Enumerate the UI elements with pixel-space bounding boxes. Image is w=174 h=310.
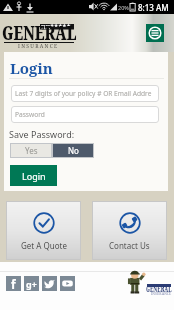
staticText: GENERAL bbox=[2, 20, 77, 46]
staticText: I N S U R A N C E bbox=[18, 43, 58, 50]
button[interactable]: Last 7 digits of your policy # OR Email … bbox=[11, 85, 159, 102]
staticText: 20% bbox=[118, 4, 129, 11]
staticText: g+ bbox=[26, 278, 37, 290]
staticText: Get A Quote bbox=[21, 240, 67, 251]
button[interactable]: Menu bbox=[146, 24, 164, 42]
staticText: Login bbox=[10, 58, 53, 78]
staticText: Contact Us bbox=[109, 240, 150, 251]
button[interactable]: Twitter bbox=[42, 276, 57, 291]
staticText: Save Password: bbox=[9, 128, 75, 140]
button[interactable]: Yes bbox=[10, 143, 52, 158]
button[interactable]: Contact Us bbox=[92, 201, 167, 260]
staticText: GENERAL bbox=[146, 282, 172, 295]
button[interactable]: Get A Quote bbox=[6, 201, 81, 260]
staticText: 8:13 AM bbox=[138, 2, 169, 13]
staticText: Password bbox=[15, 110, 45, 119]
button[interactable]: YouTube bbox=[60, 276, 75, 291]
staticText: f bbox=[11, 276, 16, 291]
button[interactable]: Password bbox=[11, 106, 159, 123]
staticText: Yes bbox=[25, 145, 38, 156]
button[interactable]: The General Insurance bbox=[3, 16, 83, 52]
staticText: No bbox=[68, 145, 79, 156]
staticText: THE bbox=[41, 24, 51, 30]
button[interactable]: Google Plus bbox=[24, 276, 39, 291]
staticText: Last 7 digits of your policy # OR Email … bbox=[15, 89, 152, 98]
staticText: ★★★★★ bbox=[50, 23, 71, 28]
button[interactable]: Login bbox=[10, 165, 57, 186]
button[interactable]: No bbox=[52, 143, 94, 158]
staticText: Login bbox=[22, 170, 46, 182]
staticText: INSURANCE bbox=[151, 291, 172, 296]
button[interactable]: Facebook bbox=[6, 276, 21, 291]
